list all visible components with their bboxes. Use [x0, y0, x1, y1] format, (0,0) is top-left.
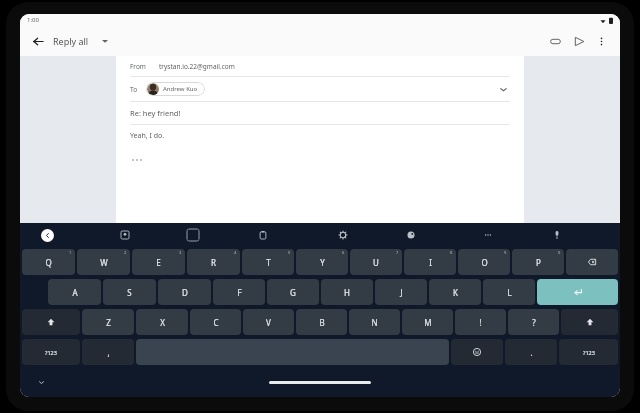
- button[interactable]: J: [375, 279, 427, 305]
- staticText: Yeah, I do.: [130, 131, 165, 141]
- staticText: .: [530, 347, 533, 358]
- button[interactable]: W: [77, 249, 130, 275]
- button[interactable]: To: [130, 77, 510, 101]
- staticText: X: [160, 317, 165, 328]
- button[interactable]: L: [483, 279, 535, 305]
- staticText: N: [371, 317, 378, 328]
- staticText: C: [213, 317, 219, 328]
- staticText: K: [453, 287, 458, 298]
- button[interactable]: Expand recipients: [496, 82, 510, 96]
- button[interactable]: B: [296, 309, 347, 335]
- button[interactable]: F: [213, 279, 265, 305]
- button[interactable]: K: [429, 279, 481, 305]
- button[interactable]: U: [350, 249, 402, 275]
- button[interactable]: Voice input: [549, 227, 565, 243]
- button[interactable]: Hide keyboard: [36, 377, 46, 387]
- button[interactable]: !: [455, 309, 506, 335]
- button[interactable]: Themes: [403, 227, 419, 243]
- button[interactable]: ,: [82, 339, 134, 365]
- button[interactable]: Y: [296, 249, 348, 275]
- button[interactable]: From: [130, 56, 510, 76]
- button[interactable]: G: [267, 279, 319, 305]
- staticText: W: [100, 257, 108, 268]
- staticText: H: [344, 287, 350, 298]
- staticText: A: [72, 287, 78, 298]
- button[interactable]: M: [402, 309, 453, 335]
- staticText: 2: [124, 250, 127, 255]
- staticText: J: [400, 287, 403, 298]
- staticText: Reply all: [53, 35, 89, 47]
- staticText: 8: [450, 250, 453, 255]
- staticText: U: [373, 257, 379, 268]
- button[interactable]: P: [512, 249, 564, 275]
- staticText: Z: [106, 317, 111, 328]
- staticText: L: [507, 287, 512, 298]
- button[interactable]: Clipboard: [255, 227, 271, 243]
- staticText: B: [319, 317, 325, 328]
- staticText: D: [182, 287, 188, 298]
- button[interactable]: I: [404, 249, 456, 275]
- staticText: 1:00: [27, 16, 39, 24]
- button[interactable]: Z: [82, 309, 134, 335]
- button[interactable]: X: [136, 309, 188, 335]
- button[interactable]: A: [48, 279, 101, 305]
- button[interactable]: Shift: [22, 309, 80, 335]
- button[interactable]: Google: [41, 229, 54, 242]
- staticText: Q: [45, 257, 52, 268]
- staticText: I: [429, 257, 432, 268]
- staticText: O: [481, 257, 488, 268]
- staticText: !: [479, 317, 482, 328]
- button[interactable]: Stickers: [117, 227, 133, 243]
- button[interactable]: E: [132, 249, 185, 275]
- button[interactable]: Shift: [561, 309, 618, 335]
- button[interactable]: Send: [569, 31, 589, 51]
- button[interactable]: H: [321, 279, 373, 305]
- staticText: Andrew Kuo: [163, 85, 198, 93]
- button[interactable]: O: [458, 249, 510, 275]
- button[interactable]: C: [190, 309, 241, 335]
- button[interactable]: N: [349, 309, 400, 335]
- button[interactable]: Enter: [537, 279, 618, 305]
- button[interactable]: S: [103, 279, 156, 305]
- button[interactable]: Re: hey friend!: [130, 102, 510, 124]
- staticText: ,: [107, 347, 110, 358]
- staticText: From: [130, 62, 146, 71]
- staticText: M: [424, 317, 432, 328]
- button[interactable]: Reply options: [97, 33, 113, 49]
- button[interactable]: Q: [22, 249, 75, 275]
- staticText: F: [237, 287, 242, 298]
- button[interactable]: Andrew Kuo: [146, 82, 205, 96]
- staticText: trystan.io.22@gmail.com: [159, 62, 235, 71]
- staticText: 3: [179, 250, 182, 255]
- button[interactable]: Emoji: [451, 339, 503, 365]
- staticText: 5: [288, 250, 291, 255]
- button[interactable]: ?: [508, 309, 559, 335]
- staticText: Y: [320, 257, 325, 268]
- staticText: To: [130, 85, 138, 94]
- staticText: E: [156, 257, 161, 268]
- button[interactable]: GIF: [185, 227, 201, 243]
- button[interactable]: .: [505, 339, 557, 365]
- button[interactable]: Settings: [335, 227, 351, 243]
- button[interactable]: Show quoted text: [130, 155, 144, 165]
- button[interactable]: R: [187, 249, 240, 275]
- button[interactable]: Back: [29, 32, 47, 50]
- button[interactable]: ?123: [559, 339, 618, 365]
- staticText: 4: [234, 250, 237, 255]
- button[interactable]: More options: [591, 31, 611, 51]
- staticText: 9: [504, 250, 507, 255]
- button[interactable]: Attach file: [545, 31, 565, 51]
- button[interactable]: ?123: [22, 339, 80, 365]
- button[interactable]: More: [480, 227, 496, 243]
- staticText: ?: [532, 317, 536, 328]
- staticText: S: [127, 287, 132, 298]
- button[interactable]: V: [243, 309, 294, 335]
- button[interactable]: D: [158, 279, 211, 305]
- staticText: 1: [69, 250, 72, 255]
- staticText: ?123: [45, 349, 57, 356]
- button[interactable]: T: [242, 249, 294, 275]
- staticText: 7: [396, 250, 399, 255]
- staticText: P: [536, 257, 541, 268]
- button[interactable]: Backspace: [566, 249, 618, 275]
